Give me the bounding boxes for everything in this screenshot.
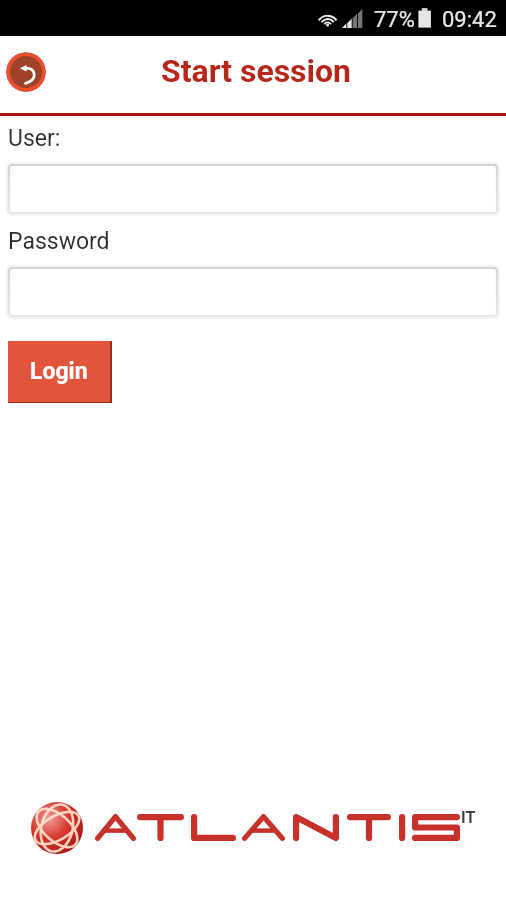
button[interactable]	[8, 267, 498, 317]
staticText: IT	[461, 808, 476, 827]
staticText: 09:42	[442, 7, 497, 33]
staticText: Login	[30, 358, 88, 385]
staticText: Password	[8, 228, 110, 255]
button[interactable]	[8, 164, 498, 214]
button[interactable]: Back	[6, 52, 46, 92]
staticText: Start session	[161, 52, 351, 90]
staticText: 77%	[374, 7, 415, 33]
button[interactable]: Login	[8, 341, 112, 403]
staticText: User:	[8, 125, 61, 152]
